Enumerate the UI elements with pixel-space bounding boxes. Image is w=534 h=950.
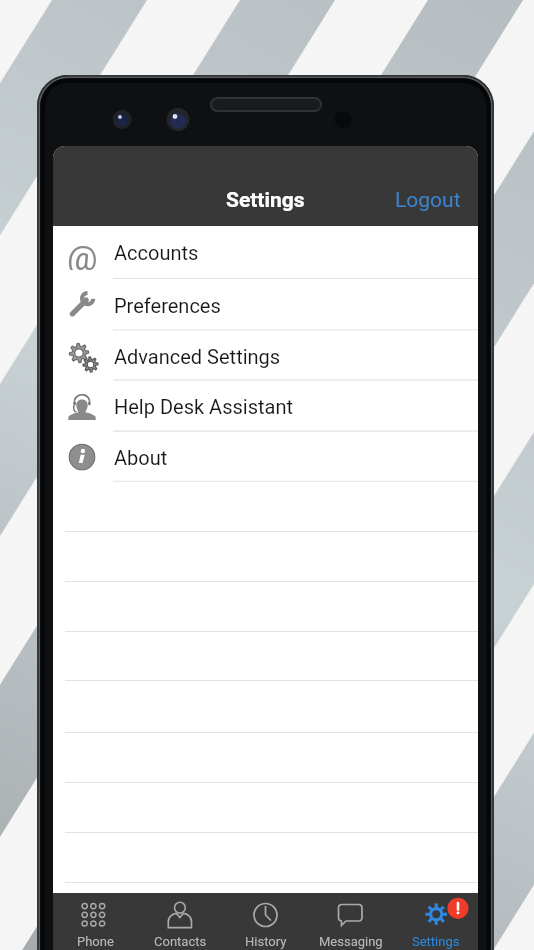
staticText: Phone: [77, 934, 114, 949]
staticText: History: [245, 934, 287, 949]
staticText: About: [114, 446, 168, 469]
button[interactable]: Advanced Settings: [53, 331, 478, 381]
staticText: Settings: [412, 934, 460, 949]
staticText: Help Desk Assistant: [114, 395, 293, 418]
button[interactable]: Help Desk Assistant: [53, 381, 478, 432]
staticText: Settings: [226, 188, 305, 213]
staticText: Accounts: [114, 241, 199, 264]
staticText: @: [67, 238, 98, 270]
button[interactable]: Phone: [53, 893, 138, 950]
button[interactable]: History: [223, 893, 308, 950]
button[interactable]: Settings: [393, 893, 478, 950]
staticText: Preferences: [114, 294, 221, 317]
button[interactable]: Contacts: [138, 893, 223, 950]
button[interactable]: Messaging: [308, 893, 393, 950]
button[interactable]: @: [53, 226, 478, 279]
button[interactable]: Logout: [378, 180, 478, 221]
staticText: Advanced Settings: [114, 345, 281, 368]
button[interactable]: About: [53, 432, 478, 482]
staticText: Messaging: [319, 934, 383, 949]
staticText: Contacts: [154, 934, 207, 949]
button[interactable]: Preferences: [53, 279, 478, 331]
staticText: Logout: [395, 188, 461, 213]
